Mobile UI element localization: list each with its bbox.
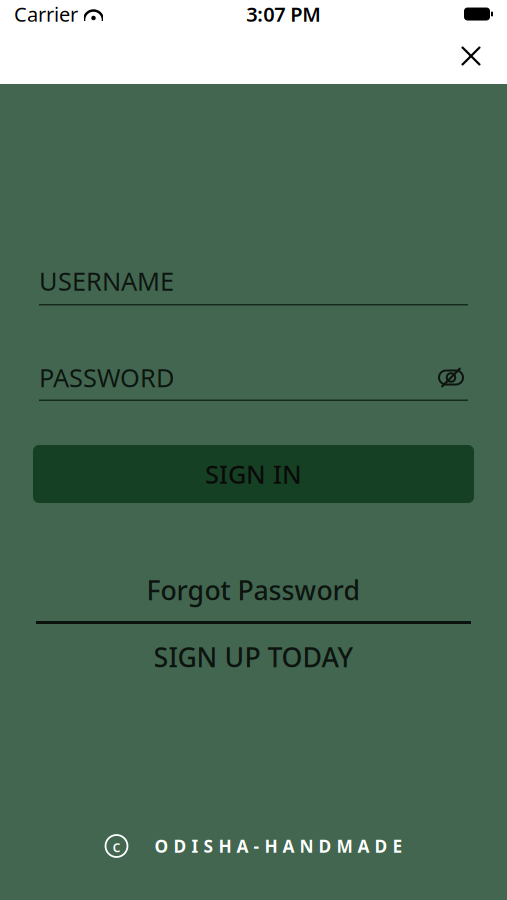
- button[interactable]: Close: [447, 32, 495, 80]
- staticText: 3:07 PM: [246, 1, 321, 27]
- button[interactable]: Forgot Password: [36, 571, 471, 609]
- staticText: c: [112, 835, 120, 857]
- button[interactable]: Show password: [434, 363, 468, 391]
- staticText: SIGN IN: [205, 457, 302, 491]
- button[interactable]: SIGN IN: [33, 445, 474, 503]
- staticText: Carrier: [14, 1, 78, 27]
- staticText: PASSWORD: [39, 361, 174, 394]
- button[interactable]: SIGN UP TODAY: [36, 638, 471, 676]
- staticText: USERNAME: [39, 264, 174, 298]
- staticText: Forgot Password: [146, 572, 360, 608]
- staticText: O D I S H A - H A N D M A D E: [154, 834, 402, 857]
- staticText: SIGN UP TODAY: [153, 639, 353, 675]
